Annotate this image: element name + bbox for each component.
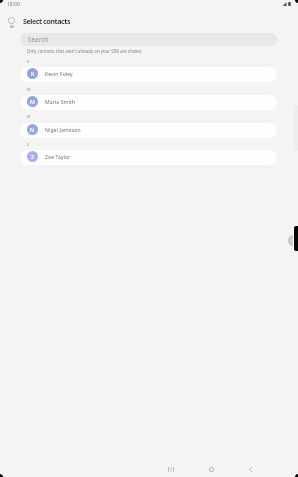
staticText: K <box>31 70 35 77</box>
staticText: N <box>27 114 30 119</box>
staticText: All <box>10 24 14 29</box>
staticText: Maria Smith <box>45 99 75 106</box>
staticText: Kevin Foley <box>45 71 73 78</box>
staticText: K <box>27 59 30 64</box>
button[interactable]: Home <box>201 459 221 477</box>
button[interactable]: Open side panel <box>294 226 298 251</box>
staticText: M <box>30 98 35 105</box>
staticText: 18:00 <box>7 1 20 8</box>
staticText: Nigel Jameson <box>45 127 81 134</box>
staticText: Z <box>27 142 30 147</box>
staticText: Only contacts that aren't already on you… <box>27 48 143 54</box>
button[interactable]: M <box>20 95 277 110</box>
staticText: M <box>27 87 31 92</box>
button[interactable]: Recent apps <box>161 459 181 477</box>
button[interactable]: N <box>20 123 277 138</box>
staticText: Z <box>31 153 35 160</box>
staticText: Search <box>28 35 49 44</box>
staticText: Zoe Taylor <box>45 154 71 161</box>
staticText: N <box>30 126 35 133</box>
staticText: Select contacts <box>23 16 71 26</box>
button[interactable]: Z <box>20 150 277 165</box>
button[interactable]: Select all contacts <box>6 17 17 29</box>
button[interactable]: Back <box>240 459 260 477</box>
button[interactable]: K <box>20 67 277 82</box>
button[interactable]: Search <box>20 33 277 46</box>
